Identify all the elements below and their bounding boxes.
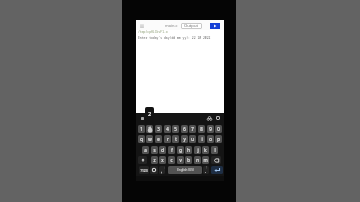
- staticText: 6: [183, 126, 186, 132]
- button[interactable]: 8: [198, 125, 205, 133]
- button[interactable]: a: [142, 146, 149, 154]
- staticText: 7: [191, 126, 194, 132]
- staticText: m: [203, 157, 208, 163]
- staticText: d: [161, 147, 164, 153]
- staticText: u: [191, 136, 194, 142]
- button[interactable]: 7: [189, 125, 196, 133]
- staticText: t: [175, 136, 177, 142]
- staticText: r: [167, 136, 169, 142]
- staticText: v: [179, 157, 182, 163]
- staticText: ?: [206, 166, 208, 170]
- staticText: a: [144, 147, 147, 153]
- staticText: i: [201, 136, 203, 142]
- button[interactable]: key: [150, 166, 158, 174]
- staticText: Enter today's day(dd mm yy): 22 10 2022: [138, 36, 211, 40]
- button[interactable]: Clipboard: [139, 115, 145, 121]
- button[interactable]: 2: [146, 125, 153, 133]
- button[interactable]: 4: [164, 125, 171, 133]
- staticText: f: [171, 147, 173, 153]
- button[interactable]: Stickers: [206, 115, 212, 121]
- staticText: c: [170, 157, 173, 163]
- button[interactable]: e: [155, 135, 162, 143]
- staticText: 2: [148, 126, 151, 132]
- staticText: .: [205, 168, 207, 174]
- button[interactable]: Run: [210, 23, 220, 29]
- button[interactable]: w: [146, 135, 153, 143]
- button[interactable]: ?123: [139, 166, 149, 174]
- button[interactable]: j: [194, 146, 201, 154]
- staticText: y: [183, 136, 186, 142]
- button[interactable]: 9: [207, 125, 214, 133]
- staticText: p: [217, 136, 220, 142]
- button[interactable]: x: [159, 156, 166, 164]
- staticText: l: [214, 147, 216, 153]
- button[interactable]: n: [194, 156, 201, 164]
- staticText: 9: [209, 126, 212, 132]
- button[interactable]: m: [202, 156, 209, 164]
- staticText: h: [187, 147, 190, 153]
- staticText: 3: [157, 126, 160, 132]
- button[interactable]: Search: [215, 115, 221, 121]
- button[interactable]: s: [151, 146, 158, 154]
- staticText: k: [204, 147, 207, 153]
- button[interactable]: k: [202, 146, 209, 154]
- button[interactable]: h: [185, 146, 192, 154]
- button[interactable]: c: [168, 156, 175, 164]
- staticText: e: [157, 136, 160, 142]
- button[interactable]: Menu: [138, 22, 145, 29]
- button[interactable]: 6: [181, 125, 188, 133]
- button[interactable]: 3: [155, 125, 162, 133]
- staticText: x: [161, 157, 164, 163]
- staticText: 5: [174, 126, 177, 132]
- button[interactable]: 1: [138, 125, 145, 133]
- staticText: !: [164, 166, 165, 170]
- staticText: English (US): [177, 168, 194, 172]
- button[interactable]: z: [151, 156, 158, 164]
- staticText: 4: [166, 126, 169, 132]
- button[interactable]: i: [198, 135, 205, 143]
- button[interactable]: key: [138, 156, 147, 164]
- staticText: n: [196, 157, 199, 163]
- staticText: /tmp/cpHLCkvF1.o: [138, 30, 168, 34]
- button[interactable]: r: [164, 135, 171, 143]
- button[interactable]: f: [168, 146, 175, 154]
- staticText: q: [140, 136, 143, 142]
- staticText: s: [153, 147, 156, 153]
- button[interactable]: key: [211, 156, 221, 164]
- button[interactable]: key: [211, 166, 223, 174]
- button[interactable]: key: [159, 166, 165, 174]
- button[interactable]: key: [203, 166, 209, 174]
- staticText: main.c: [165, 23, 178, 28]
- button[interactable]: English (US): [168, 166, 202, 174]
- button[interactable]: u: [189, 135, 196, 143]
- button[interactable]: b: [185, 156, 192, 164]
- button[interactable]: g: [177, 146, 184, 154]
- staticText: 1: [140, 126, 143, 132]
- staticText: o: [209, 136, 212, 142]
- staticText: g: [179, 147, 182, 153]
- staticText: 8: [200, 126, 203, 132]
- staticText: 0: [217, 126, 220, 132]
- staticText: w: [148, 136, 152, 142]
- button[interactable]: Output: [181, 23, 202, 29]
- staticText: ?123: [140, 168, 148, 172]
- button[interactable]: q: [138, 135, 145, 143]
- button[interactable]: l: [211, 146, 218, 154]
- button[interactable]: d: [159, 146, 166, 154]
- staticText: z: [153, 157, 156, 163]
- staticText: ,: [161, 168, 163, 174]
- button[interactable]: t: [172, 135, 179, 143]
- button[interactable]: 5: [172, 125, 179, 133]
- button[interactable]: o: [207, 135, 214, 143]
- button[interactable]: y: [181, 135, 188, 143]
- staticText: 2: [148, 110, 152, 118]
- button[interactable]: 0: [215, 125, 222, 133]
- staticText: j: [197, 147, 199, 153]
- staticText: b: [187, 157, 190, 163]
- staticText: Output: [184, 23, 199, 29]
- button[interactable]: p: [215, 135, 222, 143]
- button[interactable]: v: [177, 156, 184, 164]
